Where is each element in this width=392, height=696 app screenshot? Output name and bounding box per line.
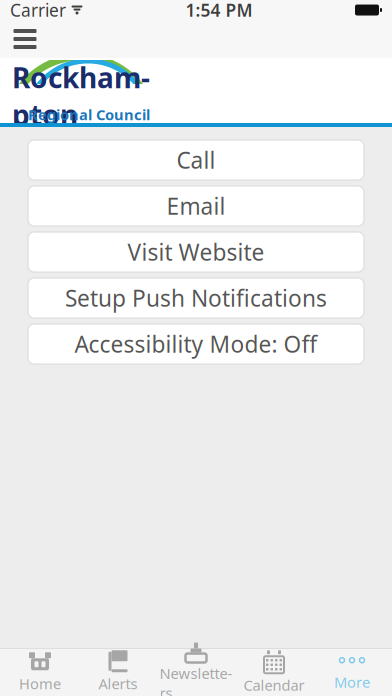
staticText: Newsletters	[159, 663, 232, 696]
staticText: Home	[19, 674, 61, 693]
button[interactable]: Email	[28, 186, 364, 226]
staticText: More	[334, 672, 370, 692]
button[interactable]: Menu	[2, 20, 48, 58]
staticText: Regional Council	[28, 105, 150, 124]
staticText: Alerts	[98, 674, 137, 693]
button[interactable]: Alerts	[79, 649, 157, 696]
staticText: Carrier	[10, 0, 66, 21]
staticText: Setup Push Notifications	[65, 283, 327, 313]
staticText: 1:54 PM	[185, 0, 252, 21]
button[interactable]: Visit Website	[28, 232, 364, 272]
staticText: Accessibility Mode: Off	[74, 329, 317, 359]
button[interactable]: Accessibility Mode: Off	[28, 324, 364, 364]
button[interactable]: Setup Push Notifications	[28, 278, 364, 318]
staticText: Email	[166, 191, 225, 221]
button[interactable]: More	[313, 649, 391, 696]
staticText: Call	[176, 145, 215, 175]
button[interactable]: Calendar	[235, 649, 313, 696]
button[interactable]: Call	[28, 140, 364, 180]
staticText: Calendar	[243, 675, 304, 695]
staticText: Visit Website	[127, 237, 264, 267]
button[interactable]: Home	[1, 649, 79, 696]
staticText: Rockhampton	[12, 59, 150, 133]
button[interactable]: Newsletters	[157, 649, 235, 696]
